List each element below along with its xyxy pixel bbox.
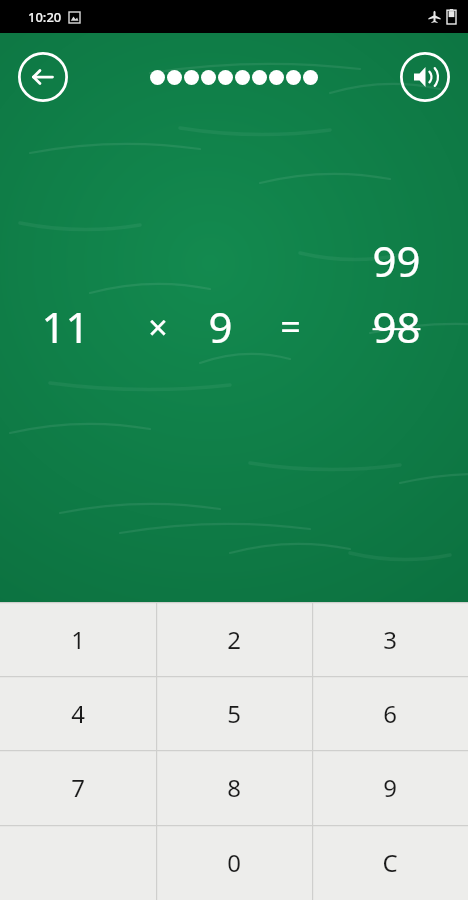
button[interactable]: Sound bbox=[396, 48, 454, 106]
button[interactable]: 9 bbox=[312, 750, 468, 825]
staticText: = bbox=[280, 302, 301, 351]
staticText: 11 bbox=[41, 298, 90, 355]
staticText: 98 bbox=[372, 298, 421, 355]
staticText: × bbox=[148, 304, 168, 350]
button[interactable]: 4 bbox=[0, 676, 156, 750]
staticText: 10:20 bbox=[28, 8, 62, 26]
staticText: 3 bbox=[383, 623, 397, 656]
staticText: 6 bbox=[383, 697, 397, 730]
button[interactable]: 5 bbox=[156, 676, 312, 750]
staticText: 9 bbox=[383, 771, 397, 804]
staticText: 8 bbox=[227, 771, 241, 804]
button[interactable]: 0 bbox=[156, 825, 312, 900]
button[interactable]: 1 bbox=[0, 602, 156, 676]
staticText: 2 bbox=[227, 623, 241, 656]
button[interactable]: 2 bbox=[156, 602, 312, 676]
button[interactable]: 3 bbox=[312, 602, 468, 676]
button[interactable]: 6 bbox=[312, 676, 468, 750]
staticText: 4 bbox=[71, 697, 85, 730]
staticText: C bbox=[382, 846, 398, 879]
staticText: 99 bbox=[372, 232, 421, 289]
staticText: 9 bbox=[208, 298, 233, 355]
staticText: 0 bbox=[227, 846, 241, 879]
button[interactable]: Back bbox=[14, 48, 72, 106]
staticText: 7 bbox=[71, 771, 85, 804]
staticText: 1 bbox=[71, 623, 85, 656]
button[interactable]: 7 bbox=[0, 750, 156, 825]
staticText: 5 bbox=[227, 697, 241, 730]
button[interactable]: C bbox=[312, 825, 468, 900]
button[interactable]: 8 bbox=[156, 750, 312, 825]
